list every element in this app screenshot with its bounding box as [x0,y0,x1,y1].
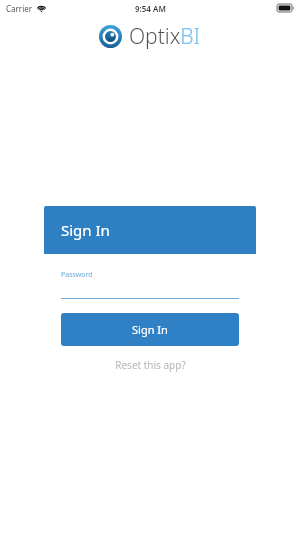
staticText: 9:54 AM [135,3,166,14]
staticText: Reset this app? [115,358,186,372]
button[interactable]: Sign In [61,313,239,346]
button[interactable]: Reset this app? [61,346,239,383]
staticText: Carrier [6,3,33,14]
staticText: OptixBI [129,22,201,51]
staticText: Password [61,270,93,280]
staticText: Sign In [132,322,168,337]
staticText: Sign In [61,220,110,240]
